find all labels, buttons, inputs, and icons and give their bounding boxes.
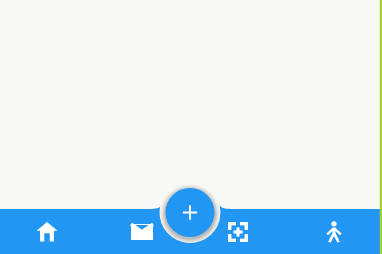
button[interactable] (0, 0, 382, 254)
button[interactable]: Home (0, 0, 382, 254)
button[interactable]: Walk (0, 0, 382, 254)
button[interactable]: Add (0, 0, 382, 254)
button[interactable]: Fullscreen (0, 0, 382, 254)
button[interactable]: Mail (0, 0, 382, 254)
